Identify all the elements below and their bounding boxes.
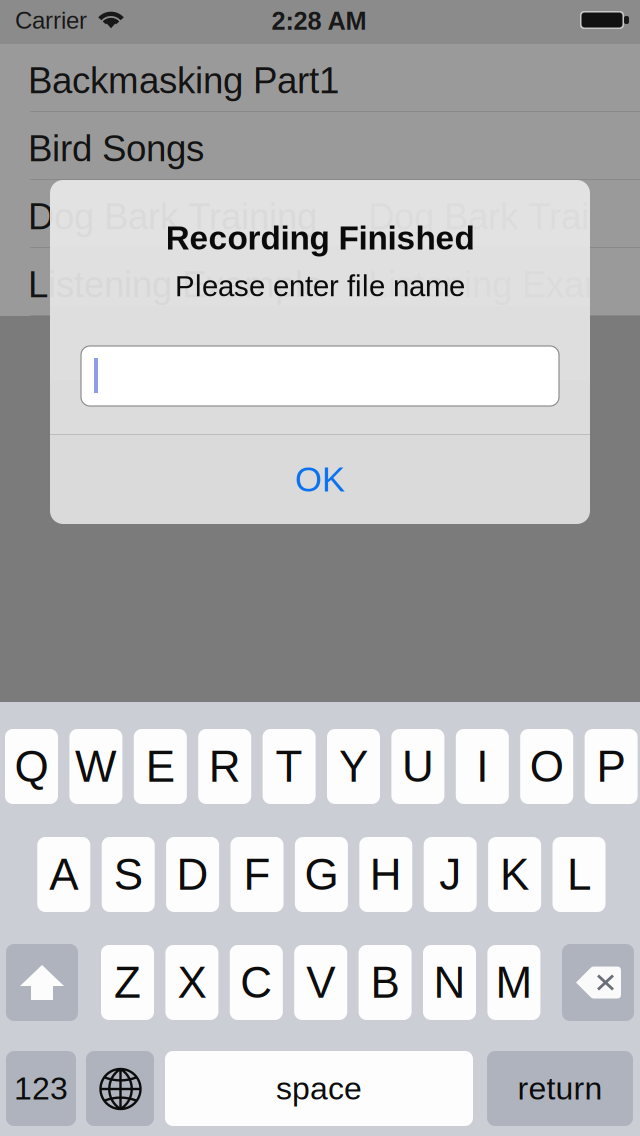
staticText: Dog Bark Training <box>368 196 640 237</box>
staticText: J <box>439 850 461 899</box>
staticText: Listening Example <box>28 264 323 305</box>
staticText: Listening Example <box>368 264 640 305</box>
button[interactable]: return <box>487 1051 633 1126</box>
button[interactable]: T <box>263 729 316 804</box>
button[interactable]: Q <box>5 729 58 804</box>
button[interactable]: W <box>69 729 122 804</box>
button[interactable]: M <box>487 945 540 1020</box>
button[interactable]: X <box>165 945 218 1020</box>
button[interactable]: space <box>165 1051 473 1126</box>
staticText: Bird Songs <box>28 128 204 169</box>
staticText: 2:28 AM <box>271 7 366 35</box>
button[interactable]: C <box>230 945 283 1020</box>
staticText: T <box>276 742 303 791</box>
staticText: A <box>49 850 78 899</box>
button[interactable]: Shift <box>6 944 78 1021</box>
button[interactable]: V <box>294 945 347 1020</box>
button[interactable]: K <box>488 837 541 912</box>
button[interactable]: S <box>102 837 155 912</box>
staticText: space <box>276 1071 362 1106</box>
button[interactable]: H <box>359 837 412 912</box>
staticText: Backmasking Part1 <box>28 60 339 101</box>
staticText: Q <box>14 742 48 791</box>
staticText: 123 <box>14 1071 68 1106</box>
staticText: I <box>476 742 488 791</box>
button[interactable]: E <box>134 729 187 804</box>
staticText: return <box>517 1071 602 1106</box>
staticText: F <box>243 850 270 899</box>
button[interactable]: P <box>585 729 638 804</box>
button[interactable]: U <box>391 729 444 804</box>
staticText: H <box>370 850 402 899</box>
staticText: Listening Example <box>28 264 323 305</box>
staticText: Dog Bark Training <box>28 196 317 237</box>
button[interactable]: D <box>166 837 219 912</box>
staticText: D <box>177 850 209 899</box>
button[interactable]: A <box>37 837 90 912</box>
button[interactable]: Listening Example <box>0 248 640 316</box>
button[interactable]: Dog Bark Training <box>0 180 640 248</box>
staticText: G <box>304 850 338 899</box>
button[interactable]: Y <box>327 729 380 804</box>
staticText: Dog Bark Training <box>28 196 317 237</box>
button[interactable]: Z <box>101 945 154 1020</box>
staticText: Recording Finished <box>165 219 474 257</box>
staticText: X <box>177 958 206 1007</box>
staticText: Z <box>114 958 141 1007</box>
button[interactable]: J <box>424 837 477 912</box>
staticText: R <box>209 742 241 791</box>
button[interactable]: OK <box>50 435 590 524</box>
staticText: Please enter file name <box>175 270 465 302</box>
staticText: O <box>530 742 564 791</box>
button[interactable]: I <box>456 729 509 804</box>
staticText: Carrier <box>15 7 87 34</box>
button[interactable]: Backmasking Part1 <box>0 44 640 112</box>
button[interactable]: B <box>359 945 412 1020</box>
staticText: W <box>75 742 117 791</box>
button[interactable]: N <box>423 945 476 1020</box>
staticText: U <box>402 742 434 791</box>
button[interactable]: 123 <box>6 1051 76 1126</box>
staticText: E <box>146 742 175 791</box>
staticText: S <box>114 850 143 899</box>
staticText: P <box>597 742 626 791</box>
staticText: B <box>371 958 400 1007</box>
button[interactable]: Delete <box>562 944 634 1021</box>
staticText: L <box>567 850 591 899</box>
staticText: K <box>500 850 529 899</box>
staticText: C <box>240 958 272 1007</box>
button[interactable]: Bird Songs <box>0 112 640 180</box>
button[interactable]: R <box>198 729 251 804</box>
staticText: N <box>433 958 465 1007</box>
button[interactable]: Next keyboard <box>86 1051 154 1126</box>
button[interactable]: L <box>552 837 605 912</box>
staticText: V <box>306 958 335 1007</box>
staticText: M <box>495 958 532 1007</box>
staticText: Y <box>339 742 368 791</box>
staticText: OK <box>295 460 345 499</box>
button[interactable]: G <box>295 837 348 912</box>
button[interactable]: F <box>230 837 283 912</box>
button[interactable]: O <box>520 729 573 804</box>
